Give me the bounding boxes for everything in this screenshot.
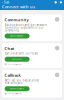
- staticText: Chat: [5, 46, 15, 51]
- button[interactable]: ‹ Back: [2, 1, 9, 4]
- staticText: Connect with us: [2, 4, 35, 9]
- button[interactable]: Request a callback: [5, 86, 30, 91]
- staticText: from other customers in our: [5, 26, 44, 29]
- staticText: Callback: [5, 72, 21, 78]
- staticText: community.: [5, 29, 20, 32]
- staticText: Join the community: [11, 35, 24, 37]
- staticText: Average wait time: 5 min: [8, 93, 22, 95]
- staticText: Request a callback: [10, 88, 24, 90]
- button[interactable]: Start a chat: [5, 57, 30, 62]
- button[interactable]: Join the community: [5, 33, 30, 38]
- staticText: Average wait time: 2 min: [8, 63, 22, 65]
- staticText: Ask questions and get answers: [5, 23, 47, 27]
- staticText: that suits you.: [5, 81, 24, 85]
- staticText: Start a chat: [12, 58, 22, 60]
- staticText: Start a chat with our team.: [5, 52, 39, 55]
- staticText: We'll call you back at a time: [5, 79, 40, 82]
- staticText: ‹ Back: [2, 1, 9, 4]
- staticText: Community: [5, 17, 29, 22]
- button[interactable]: Search: [55, 1, 57, 3]
- button[interactable]: More: [60, 1, 62, 3]
